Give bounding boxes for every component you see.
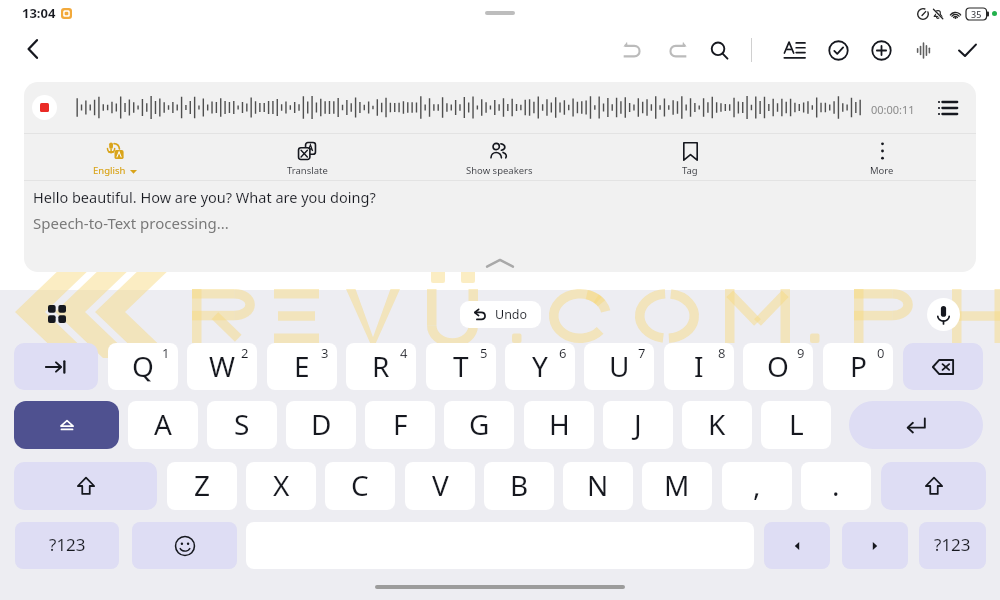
button[interactable]: F (365, 401, 435, 449)
button[interactable]: I (664, 343, 734, 390)
button[interactable]: T (426, 343, 496, 390)
staticText: K (708, 405, 726, 443)
button[interactable]: V (405, 462, 475, 510)
button[interactable]: ?123 (15, 522, 119, 569)
staticText: , (753, 466, 761, 504)
staticText: S (234, 405, 250, 443)
button[interactable]: J (603, 401, 673, 449)
button[interactable]: G (444, 401, 514, 449)
button[interactable]: E (267, 343, 337, 390)
button[interactable]: Stop recording (32, 95, 57, 120)
button[interactable]: Checklist (820, 32, 856, 68)
staticText: Speech-to-Text processing... (33, 213, 229, 233)
button[interactable]: Undo (614, 32, 650, 68)
button[interactable]: Y (505, 343, 575, 390)
button[interactable]: , (722, 462, 792, 510)
staticText: D (311, 405, 332, 443)
staticText: X (273, 466, 290, 504)
button[interactable]: C (325, 462, 395, 510)
staticText: 5 (480, 344, 488, 362)
button[interactable]: H (524, 401, 594, 449)
staticText: 8 (718, 344, 726, 362)
button[interactable]: Q (108, 343, 178, 390)
staticText: 9 (797, 344, 805, 362)
button[interactable]: Tag (630, 136, 750, 180)
staticText: Undo (495, 306, 528, 323)
button[interactable]: Keyboard options (40, 297, 74, 331)
button[interactable]: S (207, 401, 277, 449)
staticText: Y (532, 347, 548, 385)
button[interactable]: B (484, 462, 554, 510)
staticText: . (832, 466, 840, 504)
button[interactable]: Add (863, 32, 899, 68)
button[interactable]: Voice (905, 32, 941, 68)
staticText: B (510, 466, 529, 504)
button[interactable]: K (682, 401, 752, 449)
staticText: P (850, 347, 867, 385)
staticText: 4 (400, 344, 408, 362)
staticText: 1 (162, 344, 170, 362)
button[interactable]: Enter (849, 401, 983, 449)
button[interactable]: M (642, 462, 712, 510)
staticText: O (767, 347, 789, 385)
staticText: U (609, 347, 630, 385)
staticText: F (393, 405, 408, 443)
button[interactable]: English (55, 136, 175, 180)
button[interactable]: Move left (764, 522, 830, 569)
staticText: 2 (241, 344, 249, 362)
staticText: H (549, 405, 570, 443)
staticText: English (93, 164, 126, 177)
button[interactable]: W (187, 343, 257, 390)
button[interactable]: Redo (659, 32, 695, 68)
staticText: T (453, 347, 469, 385)
button[interactable]: Caps lock (14, 401, 119, 449)
button[interactable]: Voice input (927, 298, 960, 331)
button[interactable]: Backspace (903, 343, 983, 390)
button[interactable]: Move right (842, 522, 908, 569)
button[interactable]: Tab (14, 343, 98, 390)
staticText: Translate (287, 164, 328, 177)
button[interactable]: U (584, 343, 654, 390)
button[interactable]: L (761, 401, 831, 449)
button[interactable]: ?123 (919, 522, 986, 569)
staticText: I (694, 347, 704, 385)
button[interactable]: O (743, 343, 813, 390)
staticText: E (294, 347, 310, 385)
button[interactable]: N (563, 462, 633, 510)
button[interactable]: Format text (776, 32, 812, 68)
staticText: 13:04 (22, 4, 56, 22)
button[interactable]: P (823, 343, 893, 390)
button[interactable]: Done (949, 32, 985, 68)
staticText: V (432, 466, 449, 504)
staticText: 3 (321, 344, 329, 362)
staticText: 00:00:11 (871, 102, 915, 117)
staticText: 7 (638, 344, 646, 362)
staticText: ?123 (934, 533, 971, 556)
button[interactable]: More (822, 136, 942, 180)
button[interactable]: Show speakers (439, 136, 559, 180)
staticText: G (469, 405, 490, 443)
button[interactable]: . (801, 462, 871, 510)
staticText: ?123 (49, 533, 86, 556)
button[interactable]: Search (701, 32, 737, 68)
button[interactable]: D (286, 401, 356, 449)
button[interactable]: R (346, 343, 416, 390)
button[interactable]: Z (167, 462, 237, 510)
staticText: N (587, 466, 609, 504)
button[interactable]: Undo (460, 301, 541, 328)
staticText: W (209, 347, 236, 385)
button[interactable]: Back (14, 30, 52, 68)
button[interactable]: Translate (247, 136, 367, 180)
staticText: Q (132, 347, 154, 385)
button[interactable]: X (246, 462, 316, 510)
staticText: L (789, 405, 804, 443)
button[interactable]: Emoji (132, 522, 237, 569)
staticText: M (664, 466, 690, 504)
staticText: 0 (877, 344, 885, 362)
button[interactable]: Shift (14, 462, 157, 510)
button[interactable]: Transcript list (932, 92, 964, 124)
button[interactable]: A (128, 401, 198, 449)
staticText: Z (194, 466, 211, 504)
button[interactable]: Shift (881, 462, 986, 510)
